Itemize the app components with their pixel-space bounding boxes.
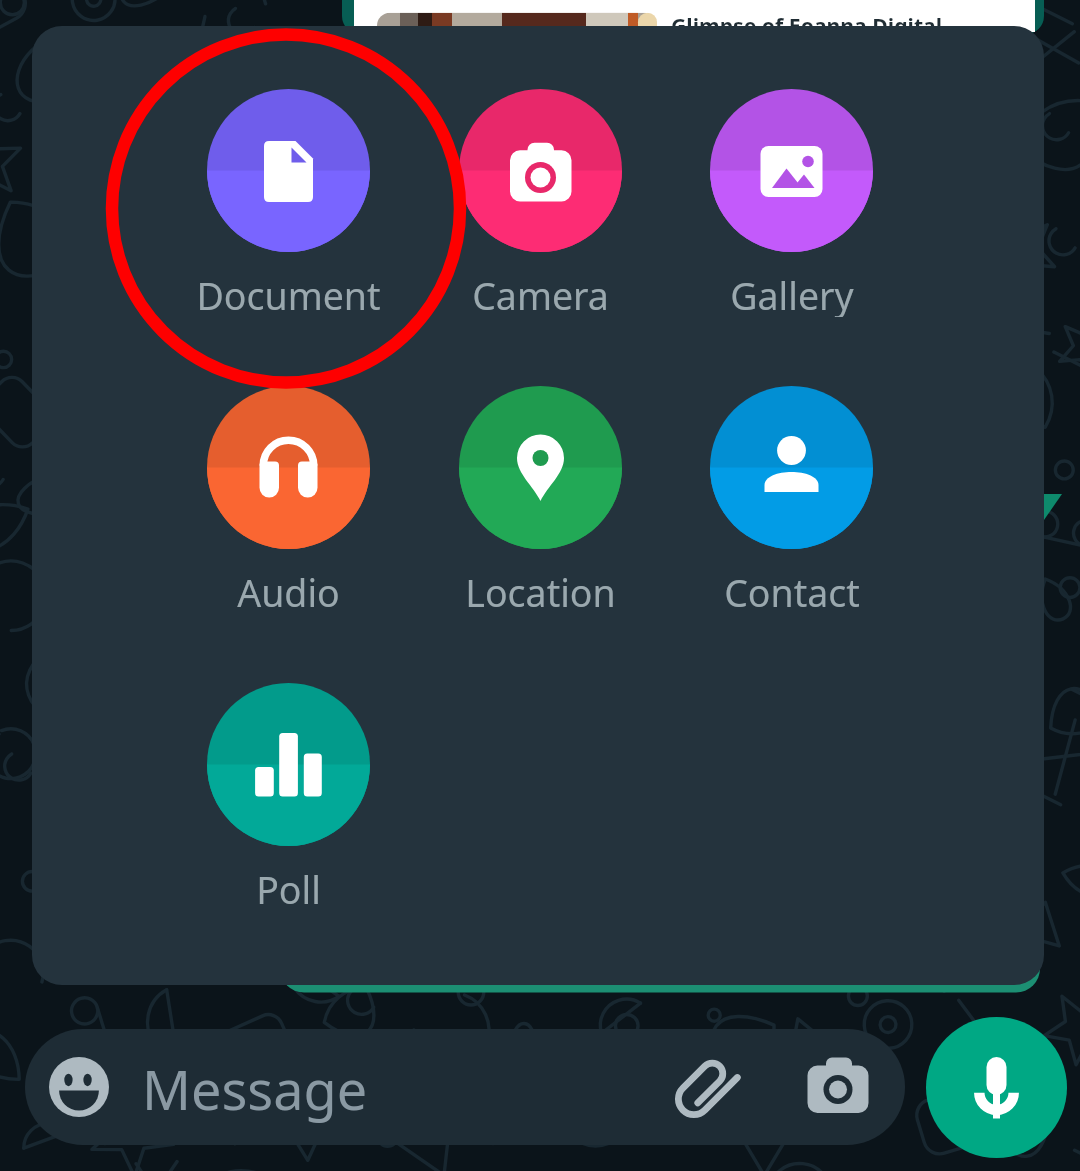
- staticText: Glimpse of Eoanna Digital: [671, 11, 943, 40]
- button[interactable]: Record voice message: [926, 1017, 1067, 1158]
- button[interactable]: Camera: [804, 1053, 872, 1121]
- button[interactable]: Camera: [430, 89, 650, 317]
- staticText: Audio: [237, 567, 340, 614]
- button[interactable]: Gallery: [681, 89, 901, 317]
- button[interactable]: Emoji: [49, 1057, 109, 1117]
- staticText: Document: [196, 270, 381, 317]
- staticText: Location: [465, 567, 616, 614]
- staticText: Message: [142, 1052, 368, 1126]
- button[interactable]: Contact: [681, 386, 901, 614]
- staticText: Contact: [724, 567, 860, 614]
- button[interactable]: Poll: [178, 683, 398, 911]
- button[interactable]: Document: [178, 89, 398, 317]
- button[interactable]: Location: [430, 386, 650, 614]
- staticText: Camera: [472, 270, 609, 317]
- staticText: Gallery: [730, 270, 854, 317]
- button[interactable]: Attach: [665, 1049, 739, 1123]
- button[interactable]: Audio: [178, 386, 398, 614]
- staticText: Poll: [256, 864, 321, 911]
